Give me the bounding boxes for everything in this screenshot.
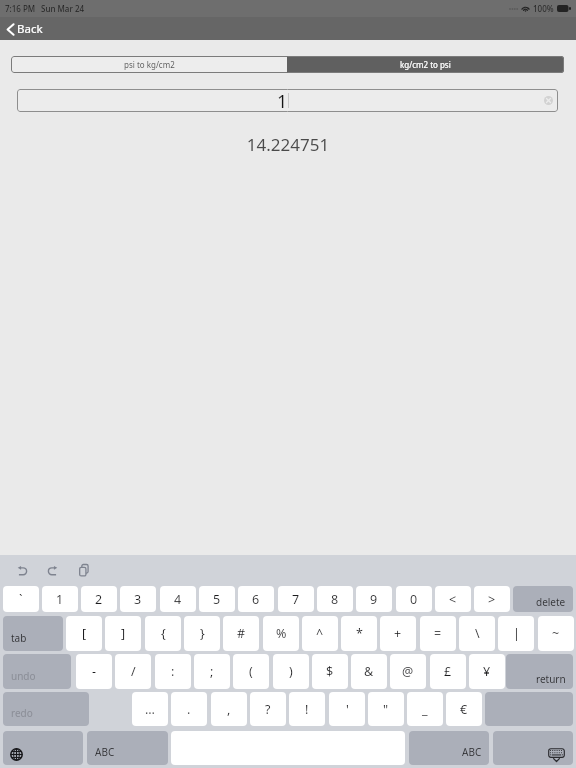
button[interactable]: @ <box>390 654 426 689</box>
button[interactable]: 1 <box>42 586 78 612</box>
staticText: … <box>145 701 155 718</box>
staticText: ABC <box>462 745 482 759</box>
button[interactable]: & <box>351 654 387 689</box>
staticText: [ <box>82 625 87 642</box>
button[interactable]: ) <box>273 654 309 689</box>
staticText: { <box>161 625 166 642</box>
staticText: @ <box>402 663 414 680</box>
staticText: redo <box>11 706 33 720</box>
button[interactable]: } <box>184 616 220 651</box>
button[interactable]: ( <box>233 654 269 689</box>
button[interactable]: . <box>171 692 207 726</box>
staticText: # <box>237 625 246 642</box>
button[interactable]: Hide keyboard <box>544 745 568 765</box>
button[interactable]: kg/cm2 to psi <box>287 56 564 73</box>
button[interactable]: ~ <box>538 616 574 651</box>
button[interactable]: ; <box>194 654 230 689</box>
button[interactable]: … <box>132 692 168 726</box>
button[interactable]: _ <box>407 692 443 726</box>
staticText: ( <box>249 663 253 680</box>
staticText: ¥ <box>483 663 491 680</box>
button[interactable]: + <box>380 616 416 651</box>
button[interactable]: 2 <box>81 586 117 612</box>
button[interactable]: # <box>223 616 259 651</box>
button[interactable]: € <box>446 692 482 726</box>
button[interactable]: 0 <box>396 586 432 612</box>
button[interactable]: psi to kg/cm2 <box>11 56 287 73</box>
button[interactable]: 9 <box>356 586 392 612</box>
staticText: kg/cm2 to psi <box>400 59 451 70</box>
button[interactable]: 3 <box>120 586 156 612</box>
button[interactable]: tab <box>3 616 63 651</box>
staticText: undo <box>11 669 36 683</box>
staticText: & <box>364 663 374 680</box>
staticText: tab <box>11 631 27 645</box>
button[interactable] <box>3 731 83 765</box>
button[interactable]: \ <box>459 616 495 651</box>
button[interactable]: redo <box>3 692 89 726</box>
button[interactable]: { <box>145 616 181 651</box>
button[interactable]: ] <box>105 616 141 651</box>
button[interactable]: £ <box>430 654 466 689</box>
button[interactable]: , <box>211 692 247 726</box>
button[interactable]: Redo <box>40 559 64 581</box>
button[interactable]: / <box>115 654 151 689</box>
button[interactable]: return <box>506 654 573 689</box>
button[interactable]: Copy <box>72 559 96 581</box>
staticText: 3 <box>134 591 142 608</box>
staticText: 1 <box>56 591 64 608</box>
staticText: 100% <box>533 3 554 14</box>
button[interactable]: ! <box>289 692 325 726</box>
button[interactable]: ? <box>250 692 286 726</box>
staticText: € <box>460 701 468 718</box>
button[interactable]: % <box>263 616 299 651</box>
button[interactable]: * <box>341 616 377 651</box>
button[interactable]: = <box>420 616 456 651</box>
button[interactable]: " <box>368 692 404 726</box>
button[interactable]: Clear <box>544 96 553 105</box>
button[interactable]: undo <box>3 654 71 689</box>
button[interactable]: < <box>435 586 471 612</box>
staticText: ? <box>265 701 271 718</box>
button[interactable]: [ <box>66 616 102 651</box>
button[interactable]: delete <box>513 586 573 612</box>
staticText: 5 <box>213 591 221 608</box>
staticText: 8 <box>331 591 339 608</box>
button[interactable]: 7 <box>278 586 314 612</box>
staticText: £ <box>444 663 452 680</box>
button[interactable]: ^ <box>302 616 338 651</box>
staticText: ^ <box>316 625 324 642</box>
staticText: = <box>434 625 442 642</box>
button[interactable]: ` <box>3 586 39 612</box>
button[interactable]: Undo <box>11 559 35 581</box>
button[interactable]: $ <box>312 654 348 689</box>
button[interactable]: ' <box>329 692 365 726</box>
staticText: < <box>449 591 457 608</box>
button[interactable]: Back <box>6 21 43 37</box>
staticText: > <box>488 591 496 608</box>
button[interactable]: 6 <box>238 586 274 612</box>
staticText: / <box>131 663 136 680</box>
staticText: ABC <box>95 745 115 759</box>
staticText: 7:16 PM <box>5 3 36 14</box>
staticText: $ <box>326 663 334 680</box>
button[interactable]: ABC <box>409 731 489 765</box>
staticText: Sun Mar 24 <box>41 3 85 14</box>
staticText: 2 <box>95 591 103 608</box>
button[interactable]: 1 <box>17 89 558 112</box>
button[interactable]: : <box>155 654 191 689</box>
button[interactable]: 4 <box>160 586 196 612</box>
button[interactable]: ¥ <box>469 654 505 689</box>
button[interactable]: 8 <box>317 586 353 612</box>
button[interactable] <box>493 731 573 765</box>
staticText: ) <box>289 663 293 680</box>
staticText: psi to kg/cm2 <box>124 59 175 70</box>
button[interactable]: | <box>498 616 534 651</box>
button[interactable]: Change keyboard <box>8 745 26 763</box>
button[interactable]: - <box>76 654 112 689</box>
button[interactable]: ABC <box>87 731 168 765</box>
button[interactable]: > <box>474 586 510 612</box>
button[interactable]: 5 <box>199 586 235 612</box>
